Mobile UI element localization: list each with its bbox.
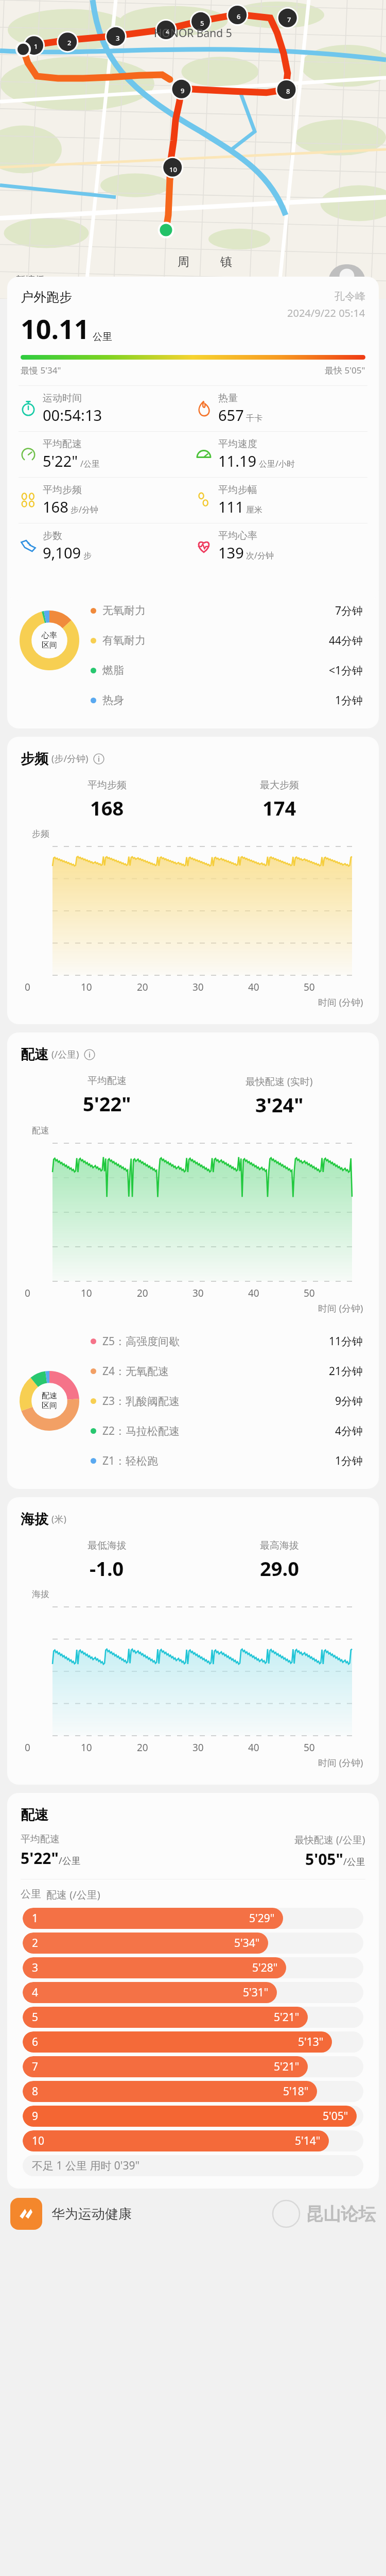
button[interactable]: Z2：马拉松配速 bbox=[91, 1416, 363, 1446]
staticText: 不足 1 公里 用时 0'39" bbox=[32, 2158, 140, 2173]
staticText: 5'29" bbox=[249, 1911, 275, 1926]
button[interactable]: 8 bbox=[23, 2081, 363, 2102]
button[interactable]: 户外跑步 bbox=[7, 277, 379, 601]
staticText: 平均步频 bbox=[43, 484, 82, 496]
staticText: 3'24" bbox=[255, 1091, 304, 1118]
staticText: 时间 (分钟) bbox=[318, 1302, 363, 1315]
staticText: 20 bbox=[137, 1741, 148, 1754]
button[interactable]: Info about 配速 bbox=[83, 1048, 96, 1061]
staticText: 0 bbox=[25, 980, 30, 994]
staticText: 厘米 bbox=[246, 505, 262, 515]
button[interactable]: Z1：轻松跑 bbox=[91, 1446, 363, 1476]
staticText: 配速 (/公里) bbox=[46, 1888, 100, 1902]
button[interactable]: 不足 1 公里 用时 0'39" bbox=[23, 2155, 363, 2176]
button[interactable]: 燃脂 bbox=[91, 655, 363, 685]
button[interactable]: 1 bbox=[23, 1908, 363, 1929]
staticText: 平均步频 bbox=[87, 779, 127, 791]
staticText: (次/分钟) bbox=[51, 318, 89, 331]
staticText: 5'05" bbox=[323, 2109, 348, 2124]
staticText: /公里 bbox=[80, 458, 100, 469]
staticText: 174 bbox=[262, 794, 296, 821]
staticText: 10 bbox=[32, 2133, 45, 2148]
staticText: 燃脂 bbox=[102, 664, 124, 677]
staticText: 平均配速 bbox=[21, 1833, 60, 1845]
staticText: 无氧耐力 bbox=[102, 604, 146, 617]
staticText: 海拔 bbox=[32, 1589, 49, 1600]
button[interactable]: Info about 步频 bbox=[93, 753, 105, 765]
button[interactable]: Z4：无氧配速 bbox=[91, 1356, 363, 1386]
staticText: 有氧耐力 bbox=[102, 634, 146, 647]
button[interactable]: User avatar bbox=[328, 264, 365, 299]
staticText: 11.19 bbox=[218, 451, 257, 471]
staticText: 140 bbox=[16, 431, 32, 432]
button[interactable]: 3 bbox=[23, 1957, 363, 1978]
staticText: 公里 bbox=[93, 331, 112, 343]
button[interactable]: 步频 bbox=[7, 737, 379, 1024]
button[interactable]: Z5：高强度间歇 bbox=[91, 1326, 363, 1356]
staticText: 配速 bbox=[42, 1391, 57, 1401]
button[interactable]: 10 bbox=[23, 2130, 363, 2151]
staticText: 1 bbox=[34, 42, 38, 51]
staticText: 公里 bbox=[21, 1888, 41, 1901]
button[interactable]: 无氧耐力 bbox=[91, 596, 363, 625]
staticText: 配速 bbox=[21, 1046, 48, 1063]
staticText: 最慢 5'34" bbox=[21, 364, 61, 376]
staticText: 平均心率 bbox=[87, 345, 127, 358]
staticText: 29.0 bbox=[260, 1555, 299, 1582]
staticText: 步数 bbox=[43, 530, 62, 542]
staticText: 华为运动健康 bbox=[51, 2206, 132, 2223]
staticText: 时间 (分钟) bbox=[318, 1756, 363, 1769]
staticText: 139 bbox=[218, 543, 244, 563]
staticText: 50 bbox=[304, 980, 315, 994]
staticText: (米) bbox=[51, 1513, 66, 1526]
staticText: 周 bbox=[178, 255, 189, 269]
button[interactable]: 7 bbox=[23, 2056, 363, 2077]
staticText: <1分钟 bbox=[329, 663, 363, 678]
button[interactable]: 5 bbox=[23, 2007, 363, 2028]
staticText: Z3：乳酸阈配速 bbox=[102, 1394, 180, 1409]
staticText: 8 bbox=[286, 87, 290, 96]
button[interactable]: Z3：乳酸阈配速 bbox=[91, 1386, 363, 1416]
staticText: 步频 bbox=[21, 750, 48, 768]
staticText: 9分钟 bbox=[335, 1394, 363, 1409]
staticText: 30 bbox=[192, 980, 204, 994]
staticText: 5'21" bbox=[274, 2059, 300, 2074]
staticText: 5'21" bbox=[274, 2010, 300, 2025]
staticText: 区间 bbox=[42, 1401, 57, 1411]
button[interactable]: 热身 bbox=[91, 685, 363, 715]
staticText: 配速 bbox=[32, 1125, 49, 1136]
staticText: 6 bbox=[32, 2035, 39, 2049]
button[interactable]: 心率 bbox=[7, 303, 379, 728]
button[interactable]: 有氧耐力 bbox=[91, 625, 363, 655]
staticText: 10.11 bbox=[21, 310, 90, 347]
button[interactable]: 2 bbox=[23, 1933, 363, 1954]
staticText: 0 bbox=[25, 1286, 30, 1300]
staticText: 9 bbox=[181, 86, 185, 95]
staticText: 5'22" bbox=[21, 1848, 59, 1869]
staticText: 热身 bbox=[102, 693, 124, 707]
button[interactable]: 6 bbox=[23, 2031, 363, 2053]
staticText: (/公里) bbox=[51, 1048, 79, 1061]
button[interactable]: 海拔 bbox=[7, 1497, 379, 1785]
staticText: 10 bbox=[169, 165, 177, 174]
button[interactable]: 配速 bbox=[7, 1793, 379, 2189]
staticText: 最大心率 bbox=[260, 345, 299, 358]
button[interactable]: 4 bbox=[23, 1982, 363, 2003]
staticText: 心率 bbox=[21, 316, 48, 334]
staticText: 5 bbox=[200, 19, 204, 28]
staticText: 最高海拔 bbox=[260, 1539, 299, 1552]
button[interactable]: 配速 bbox=[7, 1032, 379, 1489]
staticText: 40 bbox=[248, 1286, 259, 1300]
staticText: 1分钟 bbox=[335, 1453, 363, 1468]
staticText: 新塘桥 bbox=[15, 274, 45, 286]
staticText: Z1：轻松跑 bbox=[102, 1453, 159, 1468]
staticText: 168 bbox=[90, 794, 124, 821]
button[interactable]: 9 bbox=[23, 2106, 363, 2127]
staticText: 平均配速 bbox=[87, 1075, 127, 1087]
